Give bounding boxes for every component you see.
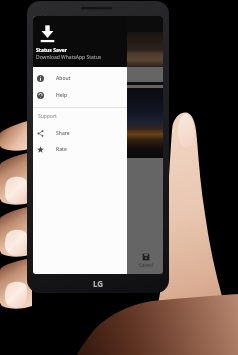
staticText: Rate bbox=[56, 146, 67, 153]
button[interactable]: About bbox=[33, 70, 127, 87]
staticText: Support bbox=[38, 113, 57, 120]
staticText: Download WhatsApp Status bbox=[36, 54, 102, 61]
button[interactable]: Saved bbox=[129, 248, 163, 274]
staticText: Saved bbox=[139, 262, 153, 269]
staticText: Share bbox=[56, 130, 70, 137]
button[interactable]: Rate bbox=[33, 141, 127, 158]
staticText: Status Saver bbox=[36, 47, 67, 54]
button[interactable]: Help bbox=[33, 87, 127, 104]
staticText: About bbox=[56, 75, 71, 82]
staticText: Help bbox=[56, 92, 68, 99]
staticText: LG bbox=[93, 278, 104, 289]
button[interactable]: Share bbox=[33, 125, 127, 142]
